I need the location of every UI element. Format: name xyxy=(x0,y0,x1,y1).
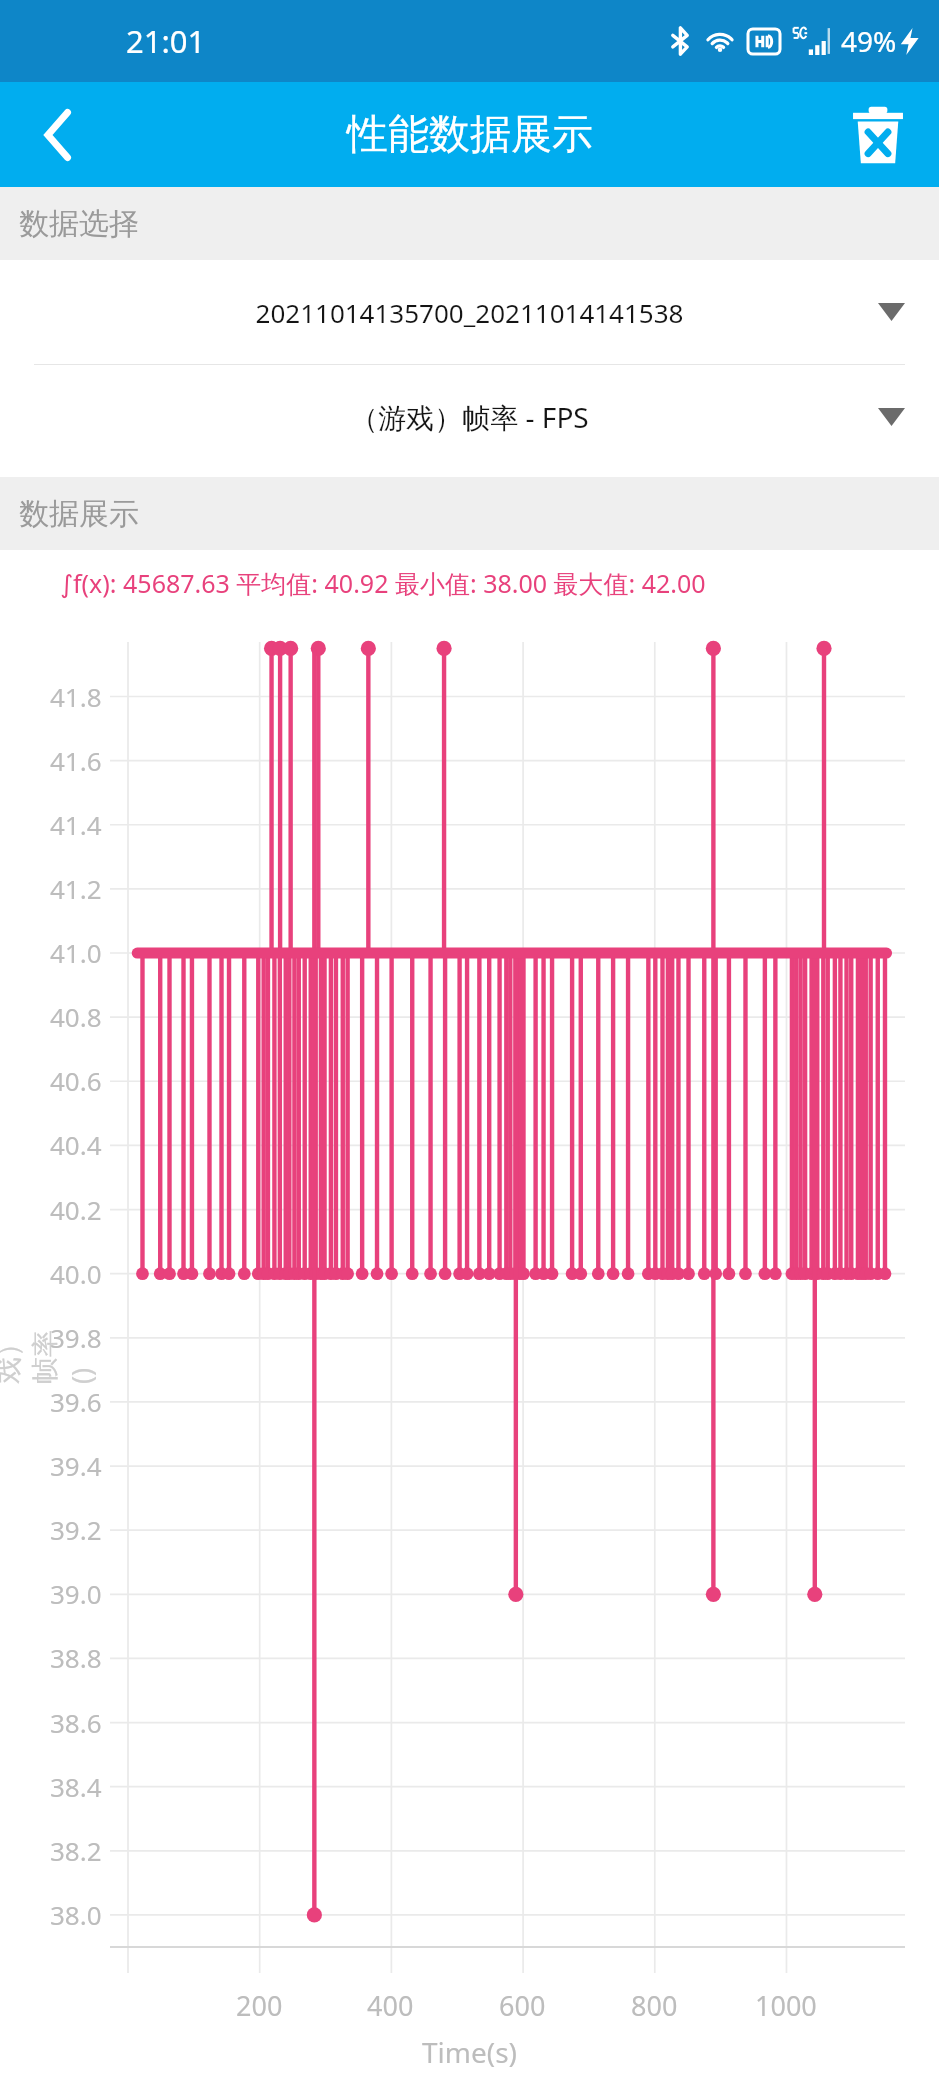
staticText: 1000 xyxy=(755,1987,817,2024)
staticText: ∫f(x): 45687.63 平均值: 40.92 最小值: 38.00 最大… xyxy=(60,566,913,600)
staticText: 41.8 xyxy=(50,679,102,714)
staticText: 20211014135700_20211014141538 xyxy=(72,295,867,330)
staticText: 49% xyxy=(841,22,897,60)
button[interactable]: Back xyxy=(18,95,98,175)
staticText: 40.4 xyxy=(50,1127,102,1162)
staticText: 39.4 xyxy=(50,1448,102,1483)
staticText: 41.4 xyxy=(50,807,102,842)
staticText: 性能数据展示 xyxy=(347,109,593,161)
staticText: 39.6 xyxy=(50,1384,102,1419)
staticText: Time(s) xyxy=(422,2033,517,2071)
staticText: 40.6 xyxy=(50,1063,102,1098)
staticText: 39.2 xyxy=(50,1512,102,1547)
staticText: 41.0 xyxy=(50,935,102,970)
staticText: 40.2 xyxy=(50,1192,102,1227)
staticText: 38.8 xyxy=(50,1640,102,1675)
staticText: 41.2 xyxy=(50,871,102,906)
staticText: 41.6 xyxy=(50,743,102,778)
staticText: 40.0 xyxy=(50,1256,102,1291)
button[interactable]: Delete xyxy=(837,94,919,176)
staticText: 38.6 xyxy=(50,1705,102,1740)
staticText: 39.0 xyxy=(50,1576,102,1611)
staticText: 200 xyxy=(236,1987,283,2024)
staticText: 40.8 xyxy=(50,999,102,1034)
button[interactable]: （游戏）帧率 - FPS xyxy=(0,365,939,469)
button[interactable]: 20211014135700_20211014141538 xyxy=(0,260,939,364)
staticText: 38.4 xyxy=(50,1769,102,1804)
staticText: 39.8 xyxy=(50,1320,102,1355)
staticText: （游戏）帧率 - FPS xyxy=(72,398,867,436)
staticText: 400 xyxy=(367,1987,414,2024)
staticText: 38.2 xyxy=(50,1833,102,1868)
staticText: 800 xyxy=(631,1987,678,2024)
staticText: 600 xyxy=(499,1987,546,2024)
staticText: 数据选择 xyxy=(19,205,139,243)
staticText: 38.0 xyxy=(50,1897,102,1932)
staticText: 21:01 xyxy=(126,20,206,62)
staticText: 数据展示 xyxy=(19,495,139,533)
staticText: （游戏）帧率() xyxy=(0,1328,100,1384)
